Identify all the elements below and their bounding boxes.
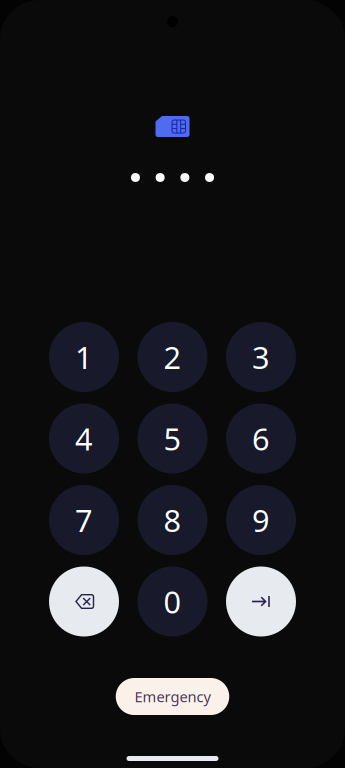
- button[interactable]: 6: [226, 403, 296, 473]
- button[interactable]: 8: [137, 485, 207, 555]
- button[interactable]: 4: [49, 403, 119, 473]
- staticText: 1: [75, 337, 93, 377]
- staticText: 9: [252, 500, 270, 540]
- button[interactable]: Emergency: [116, 678, 229, 715]
- button[interactable]: 9: [226, 485, 296, 555]
- button[interactable]: Delete: [49, 566, 119, 636]
- button[interactable]: 0: [137, 566, 207, 636]
- staticText: 7: [75, 500, 93, 540]
- staticText: Emergency: [134, 687, 210, 706]
- button[interactable]: Enter PIN: [226, 566, 296, 636]
- button[interactable]: 3: [226, 322, 296, 392]
- staticText: 8: [163, 500, 181, 540]
- staticText: 5: [163, 418, 181, 459]
- button[interactable]: 1: [49, 322, 119, 392]
- staticText: 0: [163, 581, 181, 622]
- staticText: 4: [75, 418, 93, 459]
- button[interactable]: 7: [49, 485, 119, 555]
- staticText: 2: [163, 337, 181, 377]
- staticText: 6: [252, 418, 270, 459]
- button[interactable]: 2: [137, 322, 207, 392]
- button[interactable]: 5: [137, 403, 207, 473]
- staticText: 3: [252, 337, 270, 377]
